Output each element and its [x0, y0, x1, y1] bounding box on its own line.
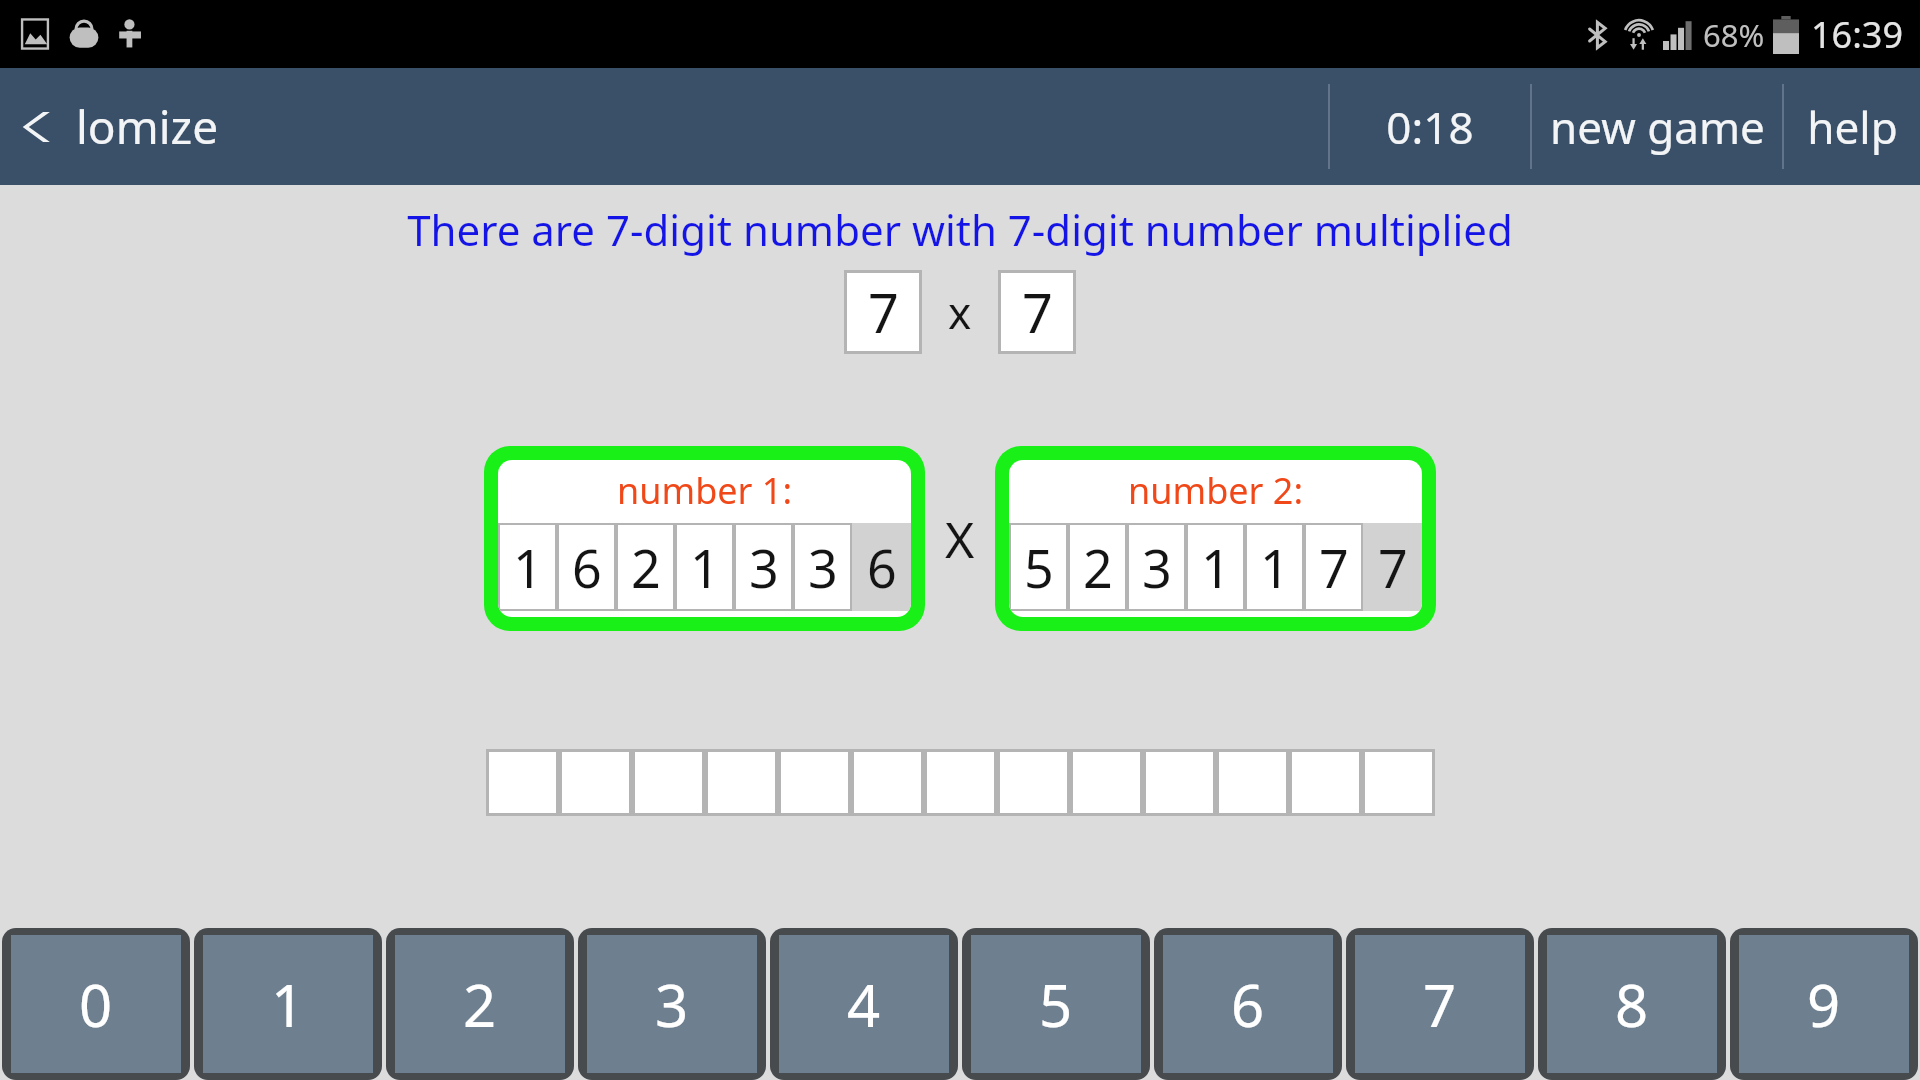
button[interactable]: help [1784, 68, 1920, 185]
staticText: x [948, 282, 972, 342]
staticText: 68% [1703, 14, 1765, 56]
button[interactable]: 1 [677, 525, 732, 609]
button[interactable]: 2 [395, 935, 565, 1073]
staticText: lomize [76, 95, 219, 158]
button[interactable]: 1 [1188, 525, 1243, 609]
staticText: new game [1550, 97, 1765, 157]
staticText: 2 [463, 965, 497, 1044]
staticText: 0 [79, 965, 113, 1044]
staticText: 9 [1807, 965, 1841, 1044]
staticText: 6 [867, 532, 897, 603]
staticText: 3 [655, 965, 689, 1044]
button[interactable]: 5 [971, 935, 1141, 1073]
button[interactable]: Back [0, 68, 239, 185]
staticText: X [945, 505, 975, 573]
staticText: 6 [1231, 965, 1265, 1044]
button[interactable]: 9 [1739, 935, 1909, 1073]
button[interactable]: 3 [587, 935, 757, 1073]
button[interactable]: 3 [736, 525, 791, 609]
button[interactable]: 2 [618, 525, 673, 609]
button[interactable]: 1 [500, 525, 555, 609]
staticText: 1 [690, 532, 720, 603]
button[interactable]: 6 [559, 525, 614, 609]
button[interactable]: 1 [1247, 525, 1302, 609]
button[interactable]: new game [1532, 68, 1782, 185]
staticText: 5 [1024, 532, 1054, 603]
button[interactable]: 3 [1129, 525, 1184, 609]
button[interactable]: 2 [1070, 525, 1125, 609]
staticText: 7 [1378, 532, 1408, 603]
staticText: 2 [631, 532, 661, 603]
button[interactable]: 1 [203, 935, 373, 1073]
button[interactable]: 0:18 [1330, 68, 1530, 185]
staticText: 1 [1201, 532, 1231, 603]
staticText: 16:39 [1811, 10, 1904, 59]
staticText: number 1: [617, 466, 793, 515]
button[interactable]: 7 [1355, 935, 1525, 1073]
button[interactable]: 7 [1365, 525, 1420, 609]
staticText: 7 [1423, 965, 1457, 1044]
button[interactable]: 6 [854, 525, 909, 609]
button[interactable]: 0 [11, 935, 181, 1073]
staticText: 6 [572, 532, 602, 603]
button[interactable]: 5 [1011, 525, 1066, 609]
staticText: 7 [1022, 275, 1053, 349]
staticText: 4 [847, 965, 881, 1044]
staticText: 0:18 [1386, 97, 1474, 157]
staticText: help [1807, 97, 1898, 157]
staticText: 1 [271, 965, 305, 1044]
staticText: 8 [1615, 965, 1649, 1044]
button[interactable]: 7 [1306, 525, 1361, 609]
staticText: 3 [808, 532, 838, 603]
staticText: 1 [513, 532, 543, 603]
staticText: There are 7-digit number with 7-digit nu… [407, 201, 1513, 258]
staticText: 5 [1039, 965, 1073, 1044]
staticText: 3 [1142, 532, 1172, 603]
other: Back [22, 110, 56, 144]
button[interactable]: 8 [1547, 935, 1717, 1073]
button[interactable]: 3 [795, 525, 850, 609]
staticText: number 2: [1128, 466, 1304, 515]
button[interactable]: 7 [1001, 273, 1073, 351]
staticText: 7 [1319, 532, 1349, 603]
button[interactable]: number 1: [498, 460, 911, 617]
button[interactable]: 6 [1163, 935, 1333, 1073]
staticText: 1 [1260, 532, 1290, 603]
button[interactable]: 4 [779, 935, 949, 1073]
staticText: 3 [749, 532, 779, 603]
button[interactable]: 7 [847, 273, 919, 351]
staticText: 2 [1083, 532, 1113, 603]
staticText: 7 [868, 275, 899, 349]
button[interactable]: number 2: [1009, 460, 1422, 617]
